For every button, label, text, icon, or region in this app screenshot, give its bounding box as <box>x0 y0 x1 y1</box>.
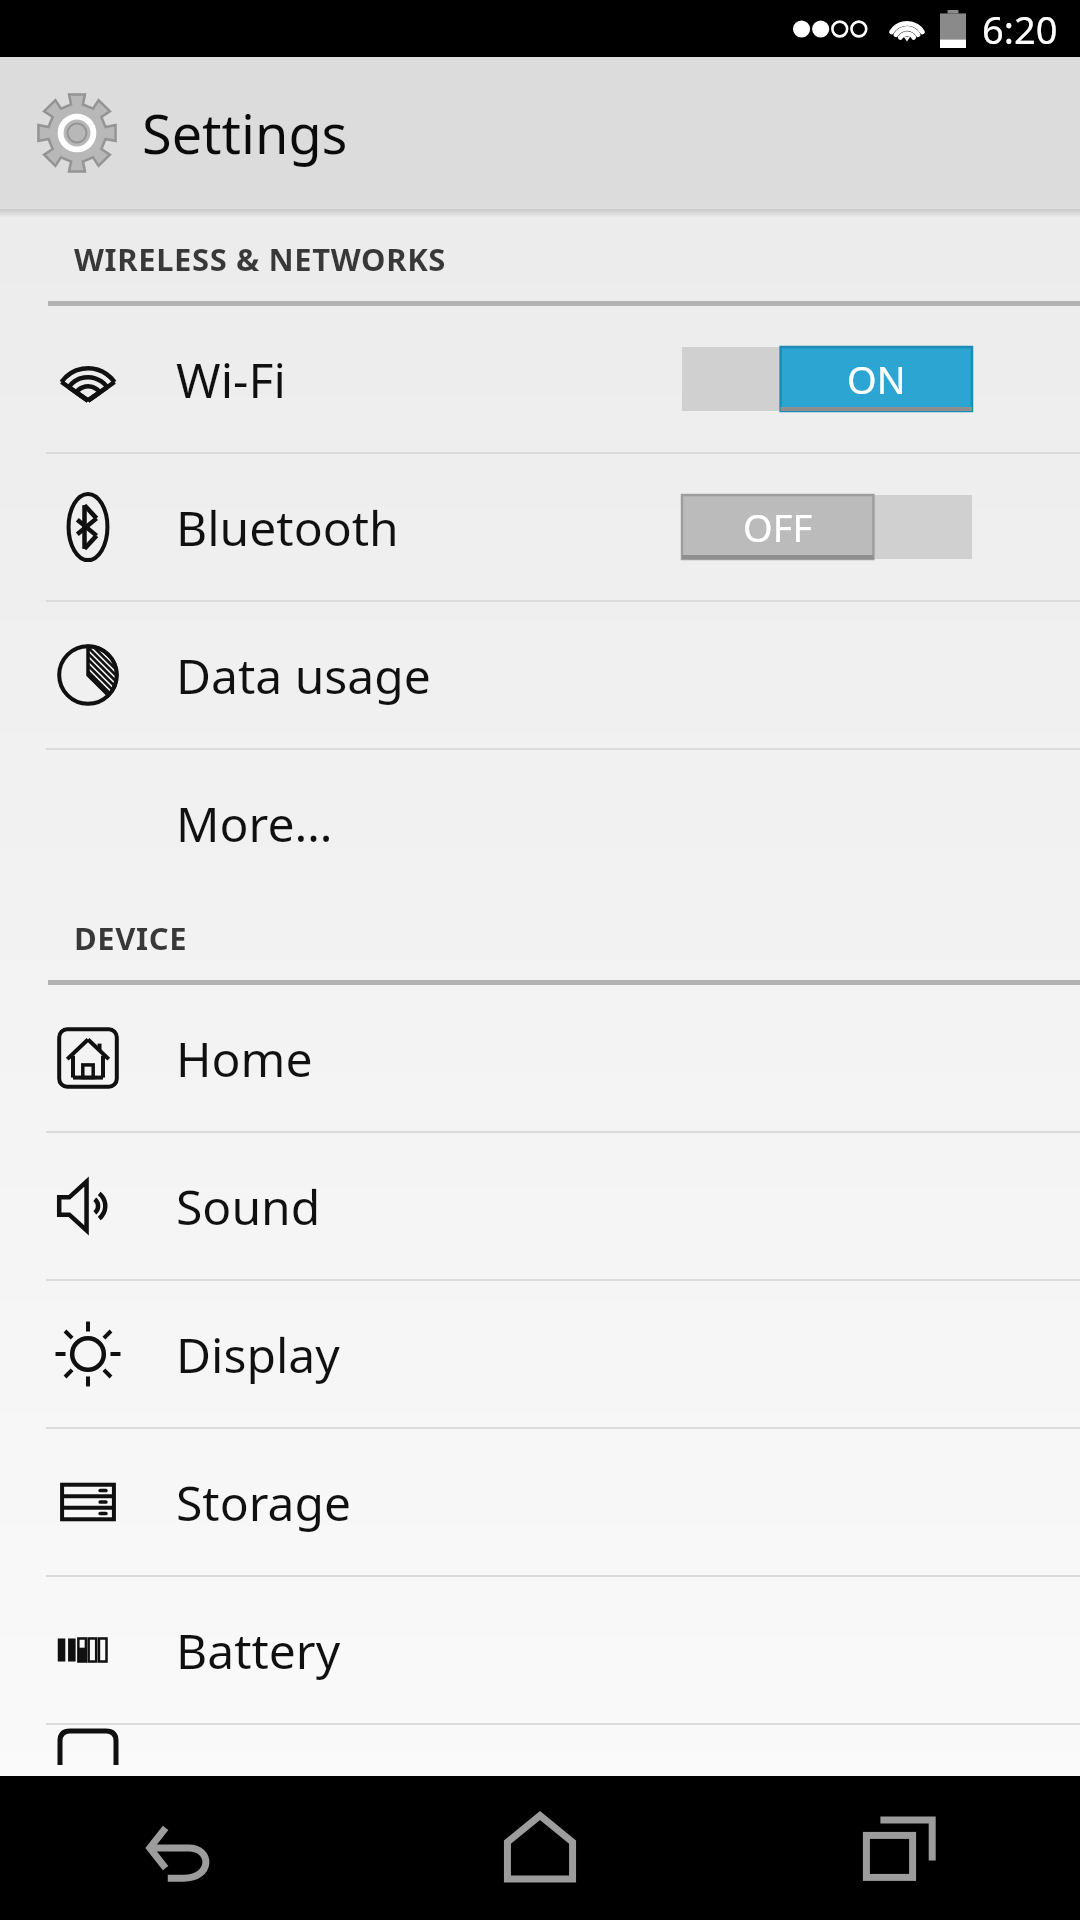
button[interactable]: More… <box>0 750 1080 896</box>
staticText: Storage <box>176 1470 352 1535</box>
staticText: OFF <box>743 501 813 553</box>
staticText: WIRELESS & NETWORKS <box>74 238 446 280</box>
button[interactable]: Bluetooth <box>0 454 1080 600</box>
button[interactable] <box>0 1725 1080 1776</box>
staticText: Battery <box>176 1618 341 1683</box>
staticText: ON <box>847 353 906 405</box>
staticText: DEVICE <box>74 917 188 959</box>
button[interactable]: Wi-Fi <box>0 306 1080 452</box>
staticText: Sound <box>176 1174 321 1239</box>
button[interactable]: OFF <box>682 495 972 559</box>
button[interactable]: Storage <box>0 1429 1080 1575</box>
button[interactable]: Home <box>360 1776 720 1920</box>
button[interactable]: Recent apps <box>720 1776 1080 1920</box>
staticText: Bluetooth <box>176 495 399 560</box>
staticText: Settings <box>142 96 348 170</box>
staticText: Home <box>176 1026 313 1091</box>
staticText: Display <box>176 1322 340 1387</box>
button[interactable]: ON <box>682 347 972 411</box>
staticText: Data usage <box>176 643 431 708</box>
button[interactable]: Sound <box>0 1133 1080 1279</box>
staticText: 6:20 <box>982 3 1058 55</box>
staticText: Wi-Fi <box>176 347 286 412</box>
button[interactable]: Back <box>0 1776 360 1920</box>
staticText: More… <box>176 791 333 856</box>
button[interactable]: Display <box>0 1281 1080 1427</box>
button[interactable]: Home <box>0 985 1080 1131</box>
button[interactable]: Data usage <box>0 602 1080 748</box>
button[interactable]: Battery <box>0 1577 1080 1723</box>
